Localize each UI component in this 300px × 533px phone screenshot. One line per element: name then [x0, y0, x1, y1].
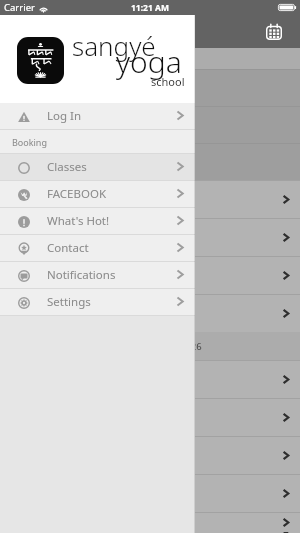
button[interactable] — [0, 180, 300, 218]
staticText: yoga — [116, 41, 182, 82]
button[interactable] — [0, 256, 300, 294]
staticText: Notifications — [47, 267, 116, 283]
button[interactable]: Calendar — [261, 19, 287, 45]
button[interactable]: Log In — [0, 103, 195, 130]
button[interactable] — [0, 398, 300, 436]
button[interactable] — [0, 106, 300, 143]
staticText: Contact — [47, 240, 89, 256]
staticText: Settings — [47, 294, 91, 310]
button[interactable]: FACEBOOK — [0, 181, 195, 208]
button[interactable]: Contact — [0, 235, 195, 262]
button[interactable] — [0, 436, 300, 474]
staticText: Carrier — [4, 1, 35, 14]
staticText: Log In — [47, 108, 82, 124]
button[interactable] — [0, 294, 300, 332]
button[interactable] — [0, 143, 300, 180]
staticText: What's Hot! — [47, 213, 110, 229]
button[interactable]: What's Hot! — [0, 208, 195, 235]
button[interactable] — [0, 69, 300, 106]
staticText: school — [151, 74, 185, 89]
button[interactable] — [0, 474, 300, 512]
staticText: Classes — [47, 159, 87, 175]
staticText: FACEBOOK — [47, 186, 107, 202]
button[interactable] — [0, 512, 300, 533]
button[interactable]: Settings — [0, 289, 195, 316]
button[interactable]: Notifications — [0, 262, 195, 289]
staticText: Booking — [12, 136, 47, 148]
staticText: sangyé — [72, 28, 156, 63]
staticText: Thursday, September 26 — [93, 340, 202, 353]
button[interactable]: Classes — [0, 154, 195, 181]
staticText: 11:21 AM — [131, 2, 169, 14]
button[interactable] — [0, 218, 300, 256]
button[interactable] — [0, 360, 300, 398]
